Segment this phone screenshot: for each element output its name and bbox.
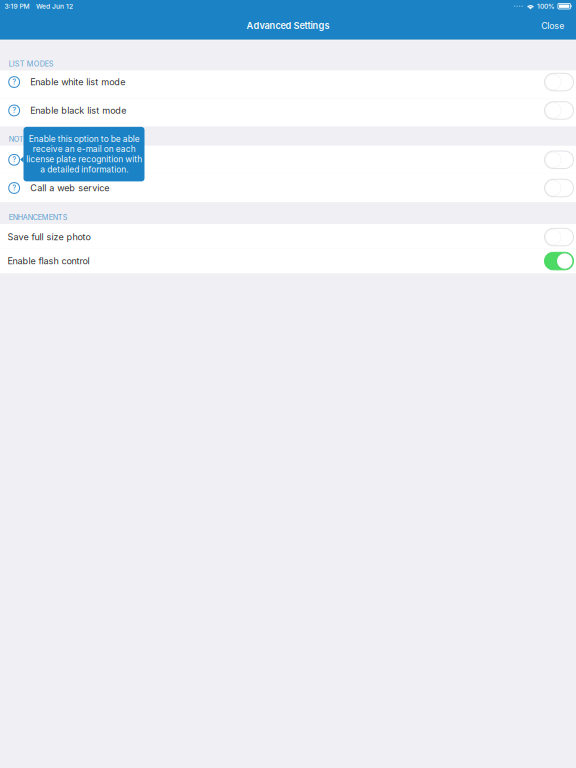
- staticText: ?: [12, 155, 16, 164]
- button[interactable]: Enable flash control: [0, 249, 576, 273]
- staticText: NOTIFICATIONS: [9, 135, 64, 143]
- staticText: ENHANCEMENTS: [9, 213, 68, 222]
- staticText: ?: [12, 183, 16, 192]
- staticText: 100%: [537, 2, 555, 10]
- staticText: Save full size photo: [8, 232, 91, 243]
- button[interactable]: Close: [541, 20, 576, 31]
- button[interactable]: ?: [0, 174, 576, 202]
- staticText: ?: [12, 77, 16, 86]
- staticText: Send an e-mail: [30, 154, 94, 165]
- button[interactable]: ?: [0, 70, 576, 98]
- staticText: Enable this option to be able receive an…: [26, 134, 142, 174]
- staticText: Enable white list mode: [30, 77, 125, 88]
- staticText: Advanced Settings: [246, 20, 329, 31]
- staticText: 3:19 PM: [5, 2, 30, 10]
- staticText: ?: [12, 106, 16, 115]
- staticText: Enable flash control: [8, 256, 90, 267]
- staticText: Enable black list mode: [30, 105, 126, 116]
- staticText: Call a web service: [30, 182, 109, 193]
- button[interactable]: ?: [0, 98, 576, 126]
- staticText: LIST MODES: [9, 59, 54, 68]
- button[interactable]: Save full size photo: [0, 224, 576, 249]
- staticText: Wed Jun 12: [36, 2, 73, 10]
- staticText: Close: [541, 20, 564, 31]
- button[interactable]: ?: [0, 146, 576, 174]
